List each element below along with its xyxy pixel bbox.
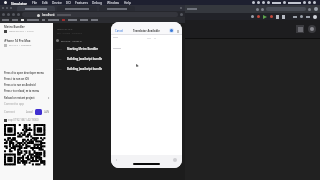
staticText: Building JavaScript bundle [67,57,103,61]
button[interactable]: Translate [169,28,174,33]
staticText: Edit [42,1,48,5]
staticText: Help [124,1,131,5]
staticText: localhost [42,13,55,17]
staticText: Debug [92,1,103,5]
staticText: Metro v0.76.8 • 0.72.6 [9,30,34,33]
staticText: Window [107,1,120,5]
staticText: exp://192.168.1.42:19000 [8,118,39,122]
button[interactable]: Cancel [114,29,125,33]
staticText: Starting Metro Bundler [67,47,98,51]
staticText: Features [75,1,88,5]
staticText: Simulator [11,1,28,5]
staticText: Fast - Scalable - Integrated [57,32,82,35]
staticText: Press d to open developer menu [4,71,44,74]
staticText: Connect [4,110,15,114]
staticText: Press a to run on Android [4,83,36,86]
staticText: Metro Bundler [4,25,25,29]
staticText: Cancel [115,29,124,33]
staticText: Building JavaScript bundle [67,67,103,71]
staticText: File [32,1,38,5]
staticText: Translator Available [133,29,160,33]
staticText: Metro v0.76.8 [57,27,73,30]
staticText: › [48,95,50,100]
staticText: BUNDLE ./index.js [61,39,82,42]
staticText: iPhone 14 Pro Max [4,39,31,43]
staticText: Device [52,1,62,5]
staticText: Reload or restart project [4,96,35,99]
staticText: LAN [44,110,49,114]
staticText: 12:06 [56,58,62,61]
staticText: Press r to reload, m to menu [4,89,40,92]
staticText: Connect to app [4,102,25,106]
staticText: Press i to run on iOS [4,77,29,80]
staticText: Local [26,110,33,114]
staticText: 12:04 [56,48,62,51]
staticText: iOS 16.4 • Simulator [9,44,32,47]
staticText: ‹ [116,157,118,162]
staticText: I/O [66,1,71,5]
staticText: 12:09 [56,68,62,71]
